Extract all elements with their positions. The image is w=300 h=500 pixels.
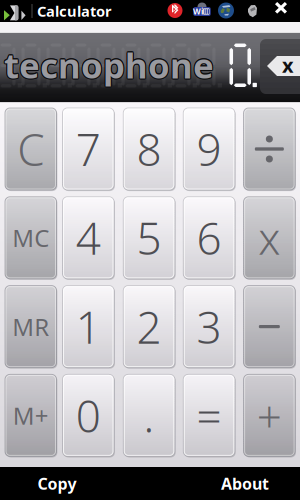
button[interactable]: About — [190, 467, 300, 500]
staticText: = — [197, 386, 222, 445]
staticText: MR — [12, 311, 49, 343]
staticText: tecnophone — [4, 43, 214, 89]
button[interactable]: 0 — [0, 0, 300, 500]
button[interactable]: x — [0, 0, 300, 500]
button[interactable]: Wi-Fi — [193, 2, 211, 20]
button[interactable] — [0, 0, 300, 500]
staticText: 7 — [76, 120, 101, 178]
staticText: tecnophone — [3, 41, 213, 87]
button[interactable]: Close — [273, 1, 295, 21]
staticText: 2 — [137, 297, 162, 356]
staticText: 3 — [197, 297, 222, 356]
staticText: Copy — [37, 473, 76, 494]
button[interactable]: 9 — [0, 0, 300, 500]
staticText: 1 — [76, 297, 101, 356]
staticText: tecnophone — [4, 42, 214, 88]
button[interactable]: Backspace — [0, 0, 300, 80]
staticText: Calculator — [37, 1, 112, 21]
button[interactable]: + — [0, 0, 300, 500]
button[interactable]: MR — [0, 0, 300, 500]
button[interactable]: M+ — [0, 0, 300, 500]
staticText: x — [258, 209, 280, 267]
staticText: MC — [12, 222, 49, 254]
staticText: 8 — [137, 120, 162, 178]
button[interactable] — [0, 0, 300, 500]
button[interactable]: MC — [0, 0, 300, 500]
button[interactable]: 3 — [0, 0, 300, 500]
button[interactable]: Copy — [2, 467, 112, 500]
button[interactable]: 7 — [0, 0, 300, 500]
staticText: tecnophone — [5, 41, 215, 87]
button[interactable]: 5 — [0, 0, 300, 500]
button[interactable]: 6 — [0, 0, 300, 500]
staticText: tecnophone — [3, 43, 213, 89]
staticText: . — [144, 386, 155, 445]
button[interactable]: C — [0, 0, 300, 500]
button[interactable]: 2 — [0, 0, 300, 500]
staticText: 5 — [137, 209, 162, 267]
staticText: Wi — [193, 6, 203, 17]
button[interactable]: Bluetooth — [166, 1, 184, 19]
staticText: 0 — [76, 386, 101, 445]
staticText: tecnophone — [4, 41, 214, 87]
button[interactable]: 8 — [0, 0, 300, 500]
staticText: 6 — [197, 209, 222, 267]
staticText: tecnophone — [5, 43, 215, 89]
button[interactable]: Volume — [244, 2, 262, 20]
button[interactable]: 1 — [0, 0, 300, 500]
staticText: M+ — [13, 399, 49, 431]
staticText: x — [282, 52, 294, 78]
staticText: About — [221, 473, 269, 494]
staticText: tecnophone — [5, 42, 215, 88]
button[interactable]: 4 — [0, 0, 300, 500]
staticText: C — [17, 120, 44, 178]
staticText: 4 — [76, 209, 101, 267]
button[interactable]: . — [0, 0, 300, 500]
button[interactable]: = — [0, 0, 300, 500]
staticText: tecnophone — [3, 42, 213, 88]
button[interactable]: Calculator — [37, 0, 157, 22]
staticText: + — [257, 386, 282, 445]
button[interactable]: Connections — [217, 1, 235, 19]
staticText: 9 — [197, 120, 222, 178]
